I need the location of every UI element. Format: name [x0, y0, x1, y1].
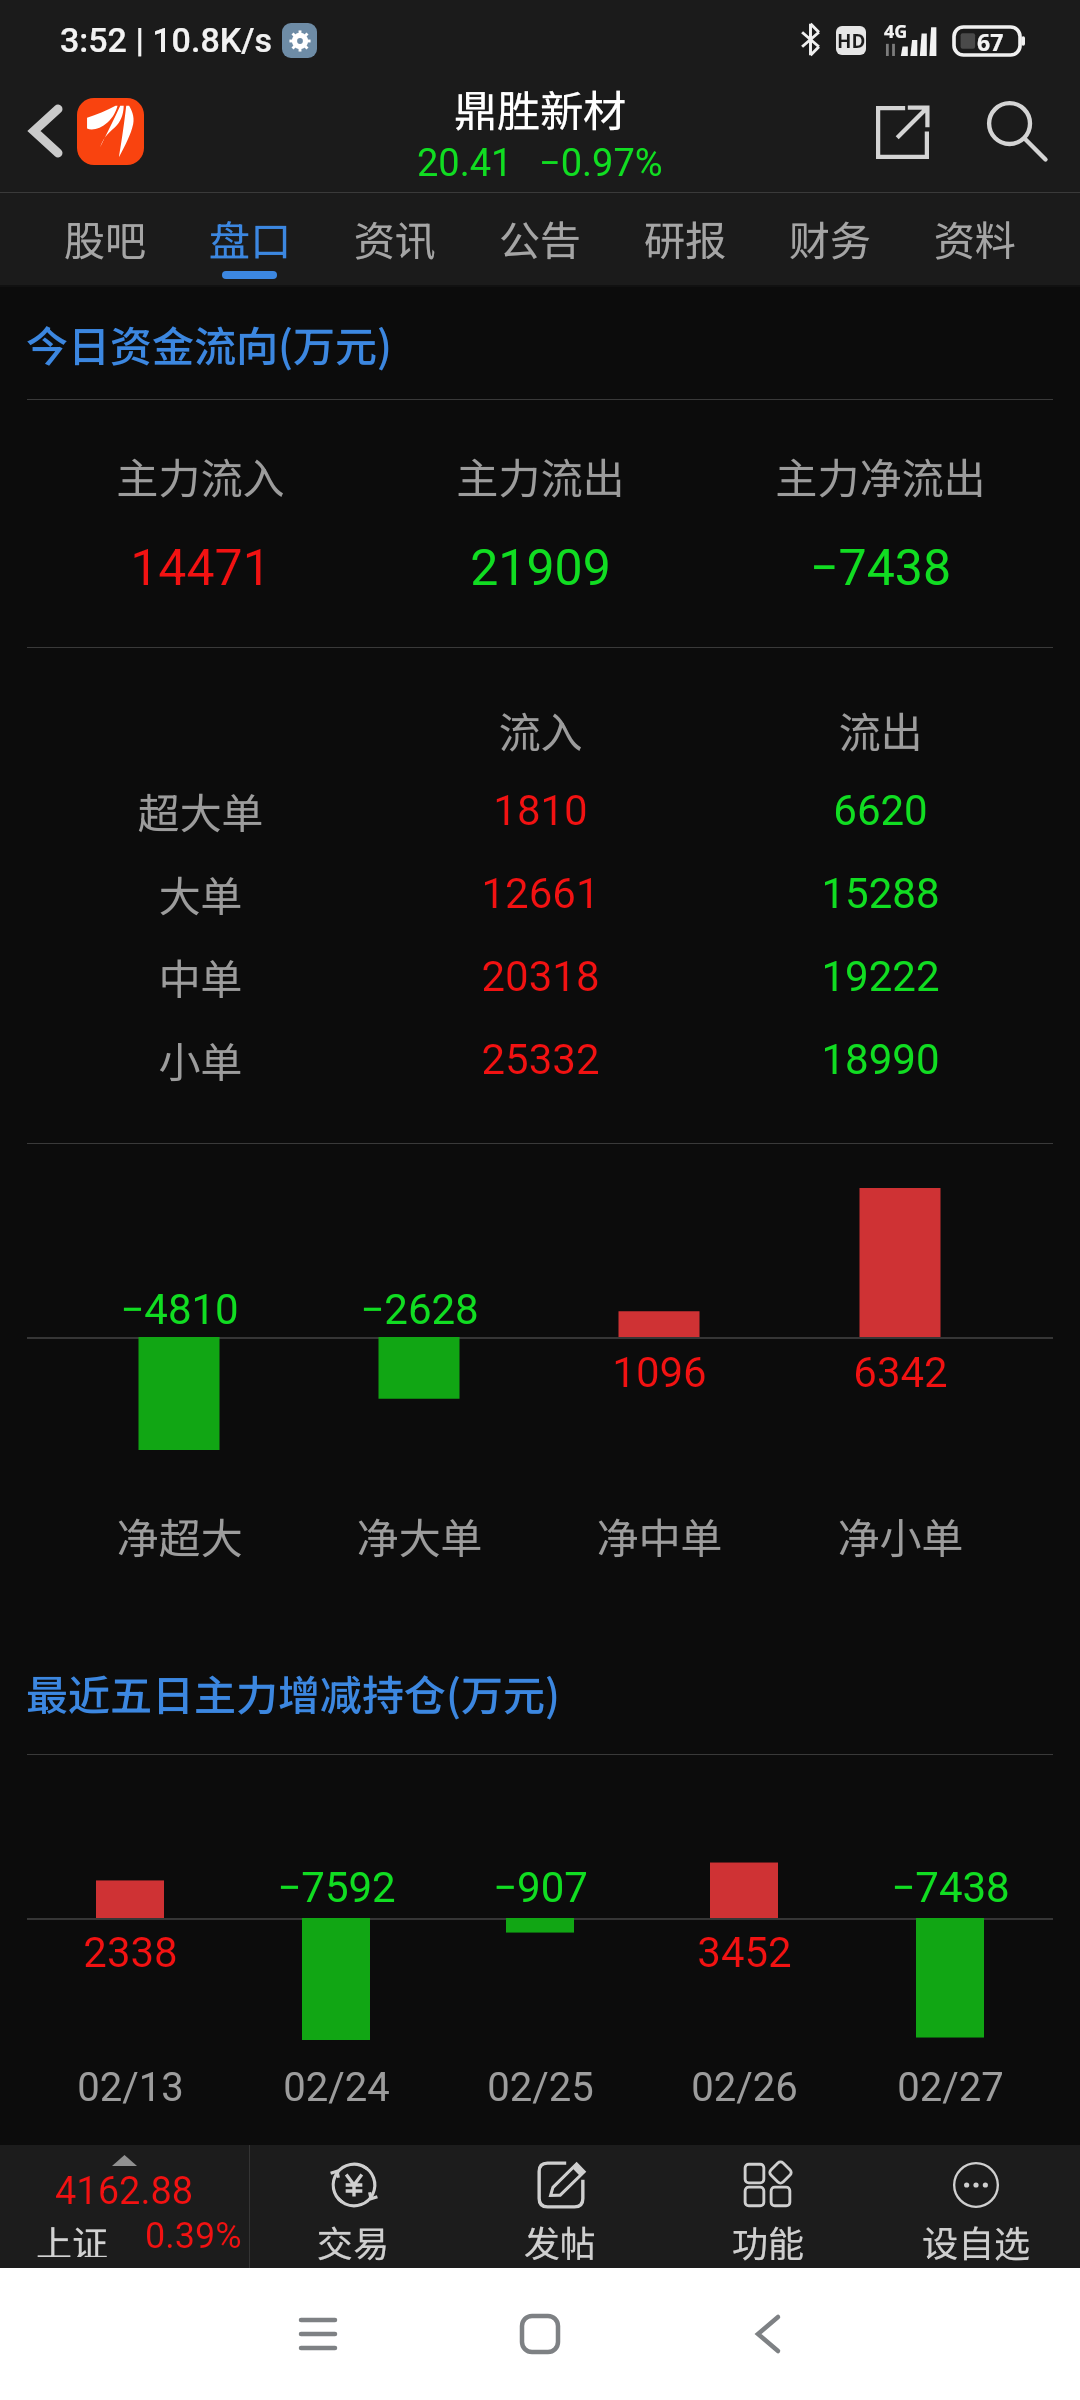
staticText: 设自选 — [922, 2215, 1031, 2261]
staticText: 净小单 — [837, 1505, 964, 1566]
button[interactable]: 发帖 — [457, 2145, 664, 2268]
staticText: 67 — [977, 26, 1004, 54]
staticText: 20.41 — [417, 141, 513, 186]
button[interactable]: Share — [862, 92, 942, 172]
staticText: 股吧 — [64, 208, 146, 267]
staticText: 3:52 | 10.8K/s — [60, 20, 272, 60]
staticText: 功能 — [732, 2215, 805, 2261]
staticText: 主力流出 — [456, 445, 625, 506]
staticText: 4G — [884, 19, 908, 44]
button[interactable]: Home — [500, 2268, 580, 2400]
staticText: 主力流入 — [116, 445, 285, 506]
staticText: 15288 — [821, 869, 940, 918]
staticText: 超大单 — [137, 780, 264, 841]
staticText: 净超大 — [116, 1505, 243, 1566]
staticText: 净大单 — [356, 1505, 483, 1566]
staticText: HD — [837, 28, 866, 54]
staticText: 02/25 — [487, 2064, 594, 2111]
staticText: 研报 — [644, 208, 726, 267]
button[interactable]: 功能 — [664, 2145, 872, 2268]
staticText: −7592 — [277, 1863, 396, 1912]
staticText: 6620 — [833, 786, 928, 835]
staticText: 18990 — [821, 1035, 940, 1084]
staticText: 资讯 — [354, 208, 436, 267]
staticText: 小单 — [158, 1029, 243, 1090]
staticText: 资料 — [934, 208, 1016, 267]
staticText: 1096 — [612, 1348, 707, 1397]
button[interactable]: Back — [14, 100, 76, 162]
staticText: 6342 — [853, 1348, 948, 1397]
staticText: 流出 — [838, 699, 923, 760]
staticText: 财务 — [789, 208, 871, 267]
staticText: −907 — [493, 1863, 588, 1912]
button[interactable]: 财务 — [757, 192, 902, 287]
staticText: 盘口 — [209, 208, 291, 267]
staticText: 20318 — [481, 952, 600, 1001]
button[interactable]: Search — [974, 88, 1060, 174]
staticText: 14471 — [130, 539, 271, 598]
button[interactable]: Recents — [278, 2268, 358, 2400]
staticText: 02/26 — [691, 2064, 798, 2111]
button[interactable]: 资料 — [902, 192, 1047, 287]
staticText: 2338 — [83, 1928, 178, 1977]
staticText: 鼎胜新材 — [454, 77, 626, 139]
button[interactable]: 4162.88 — [0, 2145, 249, 2268]
staticText: 大单 — [158, 863, 243, 924]
button[interactable]: 设自选 — [872, 2145, 1080, 2268]
button[interactable]: Back — [727, 2268, 807, 2400]
staticText: 02/13 — [77, 2064, 184, 2111]
staticText: 12661 — [481, 869, 600, 918]
staticText: −0.97% — [539, 141, 663, 186]
staticText: 4162.88 — [55, 2169, 194, 2213]
button[interactable]: 股吧 — [33, 192, 177, 287]
staticText: 02/27 — [897, 2064, 1004, 2111]
staticText: 公告 — [499, 208, 581, 267]
staticText: 中单 — [158, 946, 243, 1007]
staticText: 0.39% — [145, 2215, 242, 2257]
staticText: 最近五日主力增减持仓(万元) — [26, 1662, 560, 1723]
staticText: −7438 — [810, 539, 951, 598]
staticText: 主力净流出 — [775, 445, 986, 506]
button[interactable]: 研报 — [612, 192, 757, 287]
staticText: 3452 — [697, 1928, 792, 1977]
staticText: 交易 — [317, 2215, 390, 2261]
staticText: −2628 — [360, 1285, 479, 1334]
button[interactable]: 资讯 — [322, 192, 467, 287]
staticText: 02/24 — [283, 2064, 390, 2111]
button[interactable]: East Money — [77, 98, 144, 165]
button[interactable]: 交易 — [250, 2145, 457, 2268]
staticText: −7438 — [891, 1863, 1010, 1912]
staticText: 25332 — [481, 1035, 600, 1084]
staticText: 1810 — [493, 786, 588, 835]
staticText: 发帖 — [524, 2215, 597, 2261]
staticText: 流入 — [498, 699, 583, 760]
staticText: 19222 — [821, 952, 940, 1001]
staticText: −4810 — [120, 1285, 239, 1334]
button[interactable]: 公告 — [467, 192, 612, 287]
staticText: 净中单 — [596, 1505, 723, 1566]
staticText: 21909 — [470, 539, 611, 598]
button[interactable]: 盘口 — [177, 192, 322, 287]
staticText: 上证 — [36, 2215, 109, 2257]
staticText: 今日资金流向(万元) — [26, 313, 392, 374]
